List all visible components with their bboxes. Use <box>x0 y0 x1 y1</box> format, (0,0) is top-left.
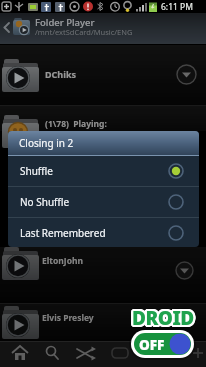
staticText: DROID <box>133 307 195 333</box>
staticText: DROID <box>135 305 197 331</box>
staticText: No Shuffle <box>20 195 70 209</box>
staticText: DROID <box>130 304 192 330</box>
staticText: DROID <box>134 306 196 332</box>
staticText: DChiks <box>45 68 77 80</box>
button[interactable]: DChiks <box>0 45 206 106</box>
staticText: Folder Player <box>35 16 95 29</box>
staticText: DROID <box>134 304 196 330</box>
button[interactable]: Last Remembered <box>8 218 199 247</box>
staticText: DROID <box>132 305 194 331</box>
button[interactable]: No Shuffle <box>8 187 199 217</box>
staticText: DROID <box>135 306 197 332</box>
button[interactable] <box>190 343 206 365</box>
staticText: DROID <box>133 306 195 332</box>
staticText: DROID <box>131 307 193 333</box>
staticText: DROID <box>130 307 192 333</box>
button[interactable] <box>176 64 197 85</box>
staticText: DROID <box>133 303 195 329</box>
staticText: DROID <box>129 305 191 331</box>
staticText: DROID <box>131 303 193 329</box>
staticText: DROID <box>134 307 196 333</box>
staticText: DROID <box>133 307 195 333</box>
staticText: DROID <box>130 303 192 329</box>
staticText: DROID <box>131 302 193 328</box>
button[interactable]: Folder Player <box>0 13 206 44</box>
staticText: DROID <box>130 306 192 332</box>
staticText: DROID <box>132 307 194 333</box>
staticText: DROID <box>131 306 193 332</box>
staticText: 6:11 PM <box>161 1 193 13</box>
staticText: Shuffle <box>20 164 53 178</box>
button[interactable]: EltonJohn <box>0 247 206 303</box>
staticText: DROID <box>132 303 194 329</box>
staticText: DROID <box>132 304 194 330</box>
staticText: DROID <box>132 306 194 332</box>
button[interactable] <box>175 261 194 280</box>
button[interactable] <box>108 343 134 365</box>
staticText: OFF <box>139 336 165 354</box>
button[interactable]: Shuffle <box>8 156 199 186</box>
staticText: (1\78) Playing: <box>45 118 107 130</box>
staticText: DROID <box>131 305 193 331</box>
staticText: DROID <box>131 308 193 334</box>
button[interactable] <box>73 343 99 365</box>
staticText: DROID <box>134 303 196 329</box>
staticText: DROID <box>133 302 195 328</box>
button[interactable] <box>8 343 32 365</box>
staticText: DROID <box>135 304 197 330</box>
button[interactable]: OFF <box>131 330 194 358</box>
staticText: DROID <box>131 307 193 333</box>
staticText: Last Remembered <box>20 226 106 240</box>
staticText: Elvis Presley <box>42 312 94 324</box>
staticText: DROID <box>133 308 195 334</box>
staticText: DROID <box>129 306 191 332</box>
staticText: EltonJohn <box>42 255 83 267</box>
staticText: DROID <box>133 305 195 331</box>
staticText: DROID <box>133 303 195 329</box>
staticText: DROID <box>131 303 193 329</box>
staticText: DROID <box>130 304 192 330</box>
button[interactable] <box>40 343 64 365</box>
button[interactable]: Elvis Presley <box>0 304 206 341</box>
staticText: /mnt/extSdCard/Music/ENG <box>35 27 133 37</box>
staticText: DROID <box>132 302 194 328</box>
staticText: DROID <box>133 304 195 330</box>
staticText: DROID <box>134 305 196 331</box>
staticText: DROID <box>131 304 193 330</box>
staticText: DROID <box>134 304 196 330</box>
button[interactable]: (1\78) Playing: <box>0 106 206 131</box>
staticText: DROID <box>129 304 191 330</box>
staticText: DROID <box>130 306 192 332</box>
staticText: DROID <box>130 305 192 331</box>
staticText: DROID <box>134 306 196 332</box>
staticText: Closing in 2 <box>19 136 74 150</box>
staticText: DROID <box>132 308 194 334</box>
